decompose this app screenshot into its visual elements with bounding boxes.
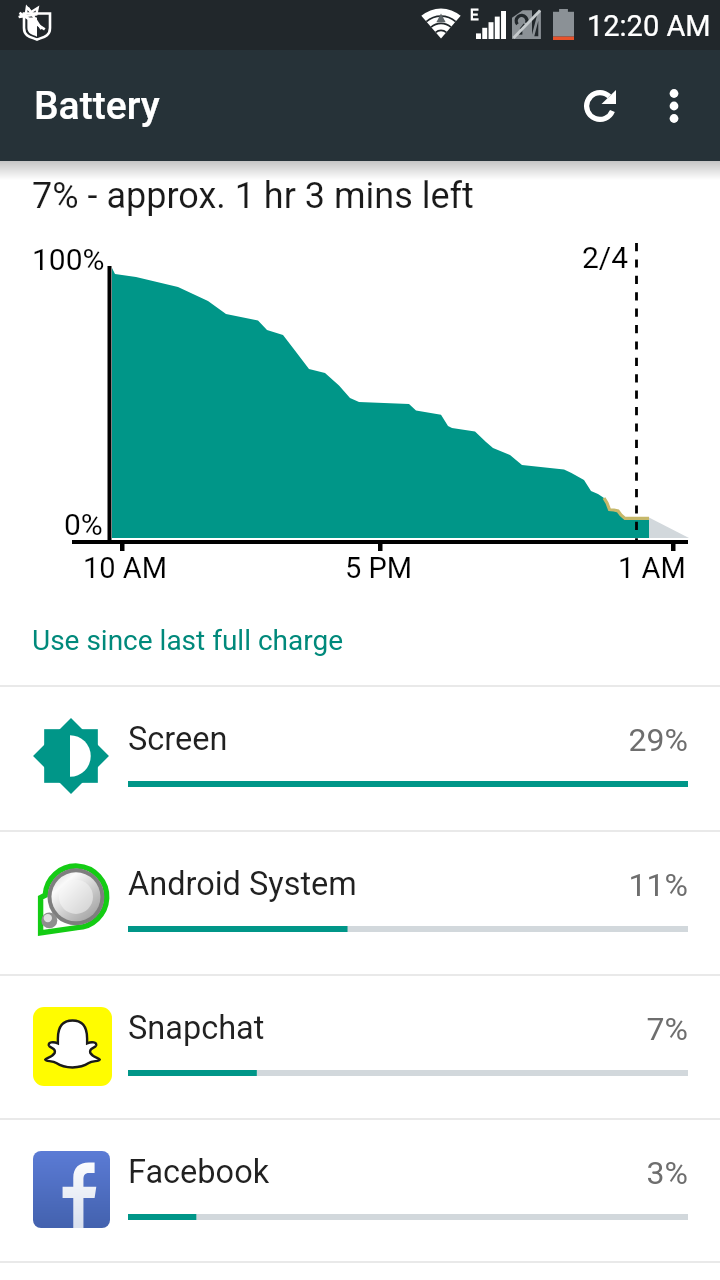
staticText: E: [470, 6, 479, 24]
staticText: 100%: [32, 242, 105, 277]
button[interactable]: More options: [642, 74, 706, 138]
staticText: 12:20 AM: [587, 9, 711, 43]
staticText: 3%: [0, 1154, 688, 1192]
button[interactable]: Screen: [0, 685, 720, 829]
button[interactable]: Android System: [0, 830, 720, 974]
staticText: Snapchat: [128, 1009, 265, 1047]
staticText: 5 PM: [345, 551, 413, 585]
button[interactable]: Refresh: [566, 72, 634, 140]
button[interactable]: Snapchat: [0, 974, 720, 1118]
staticText: 2/4: [582, 240, 629, 275]
staticText: 7% - approx. 1 hr 3 mins left: [32, 175, 474, 217]
staticText: 1 AM: [618, 551, 686, 585]
staticText: 29%: [0, 721, 688, 759]
staticText: 11%: [0, 866, 688, 904]
staticText: Android System: [128, 865, 357, 903]
staticText: 0%: [64, 507, 103, 542]
staticText: 7%: [0, 1010, 688, 1048]
button[interactable]: Use since last full charge: [0, 602, 720, 685]
staticText: Facebook: [128, 1153, 270, 1191]
staticText: Battery: [34, 83, 160, 129]
staticText: Use since last full charge: [32, 624, 344, 657]
staticText: 10 AM: [83, 551, 168, 585]
staticText: Screen: [128, 720, 228, 758]
button[interactable]: Facebook: [0, 1118, 720, 1262]
